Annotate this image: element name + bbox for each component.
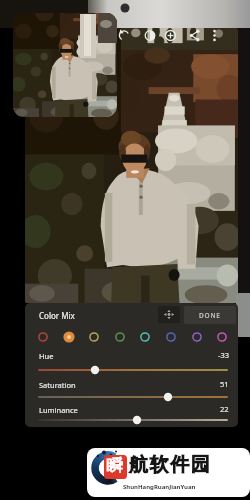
staticText: 22 <box>220 404 229 414</box>
button[interactable] <box>38 392 228 402</box>
staticText: DONE <box>199 311 221 320</box>
staticText: 瞬 <box>106 455 123 476</box>
button[interactable] <box>113 25 135 47</box>
button[interactable] <box>135 25 157 47</box>
button[interactable] <box>138 330 152 344</box>
staticText: -33 <box>218 350 229 360</box>
button[interactable] <box>62 330 76 344</box>
button[interactable] <box>201 25 223 47</box>
staticText: Luminance <box>39 405 78 415</box>
staticText: Saturation <box>39 380 76 390</box>
button[interactable] <box>179 25 201 47</box>
staticText: ShunHangRuanJianYuan <box>123 483 196 491</box>
button[interactable] <box>38 365 228 375</box>
button[interactable]: 瞬 <box>87 448 250 497</box>
button[interactable] <box>190 330 204 344</box>
button[interactable] <box>87 330 101 344</box>
button[interactable]: DONE <box>184 306 236 324</box>
button[interactable] <box>164 330 178 344</box>
button[interactable] <box>158 306 180 323</box>
staticText: 航软件园 <box>129 453 212 477</box>
button[interactable] <box>215 330 229 344</box>
button[interactable] <box>157 25 179 47</box>
button[interactable] <box>36 330 50 344</box>
staticText: 51 <box>220 379 229 389</box>
staticText: Color Mix <box>39 310 75 321</box>
staticText: Hue <box>39 351 54 361</box>
button[interactable] <box>113 330 127 344</box>
button[interactable] <box>38 415 228 425</box>
